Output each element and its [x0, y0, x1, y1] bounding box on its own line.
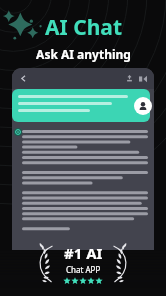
staticText: AI Chat: [45, 13, 122, 42]
staticText: Chat APP: [66, 264, 101, 275]
button[interactable]: Back: [17, 72, 30, 85]
button[interactable]: Share: [123, 72, 136, 85]
staticText: Ask AI anything: [36, 46, 131, 62]
button[interactable]: Profile: [12, 89, 154, 124]
button[interactable]: Profile: [134, 97, 152, 115]
staticText: #1 AI: [64, 243, 103, 263]
button[interactable]: New chat: [136, 72, 149, 85]
